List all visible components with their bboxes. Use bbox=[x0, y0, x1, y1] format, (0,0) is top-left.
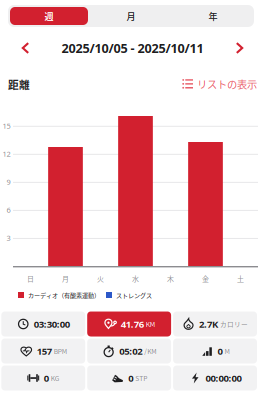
button[interactable]: 157 bbox=[1, 338, 85, 363]
staticText: STP bbox=[135, 373, 147, 383]
button[interactable]: 00:00:00 bbox=[173, 365, 257, 390]
staticText: /KM bbox=[144, 346, 156, 356]
staticText: 03:30:00 bbox=[34, 317, 70, 331]
staticText: 月 bbox=[126, 9, 135, 22]
staticText: 日 bbox=[27, 273, 34, 283]
button[interactable]: 週 bbox=[8, 5, 90, 27]
staticText: 金 bbox=[202, 273, 209, 283]
button[interactable]: 0 bbox=[1, 365, 85, 390]
staticText: 3 bbox=[6, 233, 10, 243]
button[interactable]: 0 bbox=[173, 338, 257, 363]
staticText: KG bbox=[51, 373, 60, 383]
staticText: 2.7K bbox=[199, 317, 218, 331]
staticText: 2025/10/05 - 2025/10/11 bbox=[61, 39, 203, 57]
staticText: カロリー bbox=[220, 319, 248, 329]
staticText: 6 bbox=[6, 205, 10, 215]
staticText: リストの表示 bbox=[197, 77, 257, 91]
button[interactable]: リストの表示 bbox=[182, 76, 257, 92]
staticText: 週 bbox=[44, 9, 53, 22]
staticText: 41.76 bbox=[121, 317, 144, 331]
button[interactable]: 05:02 bbox=[87, 338, 171, 363]
button[interactable]: 月 bbox=[90, 5, 172, 27]
staticText: BPM bbox=[54, 346, 67, 356]
staticText: 15 bbox=[2, 121, 10, 131]
staticText: 距離 bbox=[8, 76, 30, 92]
staticText: 年 bbox=[208, 9, 217, 22]
staticText: カーディオ（有酸素運動） bbox=[28, 291, 100, 299]
staticText: ストレングス bbox=[116, 291, 152, 299]
staticText: 0 bbox=[44, 371, 49, 385]
button[interactable]: 年 bbox=[172, 5, 254, 27]
staticText: 月 bbox=[62, 273, 69, 283]
staticText: 火 bbox=[97, 273, 104, 283]
staticText: 土 bbox=[237, 273, 244, 283]
button[interactable]: Next week bbox=[226, 35, 252, 61]
button[interactable]: 2.7K bbox=[173, 311, 257, 336]
staticText: 05:02 bbox=[119, 344, 142, 358]
staticText: 12 bbox=[2, 149, 10, 159]
staticText: KM bbox=[146, 319, 155, 329]
staticText: 0 bbox=[218, 344, 223, 358]
button[interactable]: Previous week bbox=[12, 35, 38, 61]
staticText: 木 bbox=[167, 273, 174, 283]
staticText: M bbox=[225, 346, 230, 356]
staticText: 157 bbox=[37, 344, 52, 358]
button[interactable]: 03:30:00 bbox=[1, 311, 85, 336]
staticText: 0 bbox=[128, 371, 133, 385]
button[interactable]: 41.76 bbox=[87, 311, 171, 336]
button[interactable]: 0 bbox=[87, 365, 171, 390]
staticText: 水 bbox=[132, 273, 139, 283]
staticText: 9 bbox=[6, 177, 10, 187]
staticText: 00:00:00 bbox=[206, 371, 242, 385]
